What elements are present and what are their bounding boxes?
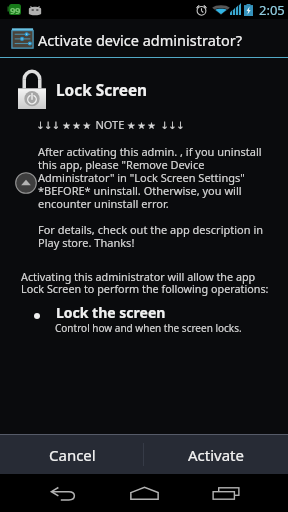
staticText: Activate device administrator? [38, 30, 243, 50]
staticText: For details, check out the app descripti… [38, 222, 271, 251]
staticText: Activate [188, 445, 244, 465]
staticText: After activating this admin. , if you un… [38, 144, 271, 212]
staticText: Cancel [49, 445, 96, 465]
staticText: ↓↓↓ ★★★ NOTE ★★★ ↓↓↓ [36, 117, 184, 132]
button[interactable]: Home [121, 477, 167, 509]
staticText: Lock Screen [56, 80, 148, 101]
button[interactable]: Cancel [0, 435, 144, 475]
staticText: 99 [10, 4, 20, 15]
staticText: 2:05 [259, 1, 285, 19]
button[interactable]: Back [40, 477, 86, 509]
staticText: Lock the screen [56, 303, 166, 322]
button[interactable]: Recent apps [203, 477, 249, 509]
button[interactable]: Activate [144, 435, 288, 475]
staticText: Control how and when the screen locks. [55, 321, 242, 335]
staticText: Activating this administrator will allow… [21, 269, 269, 296]
